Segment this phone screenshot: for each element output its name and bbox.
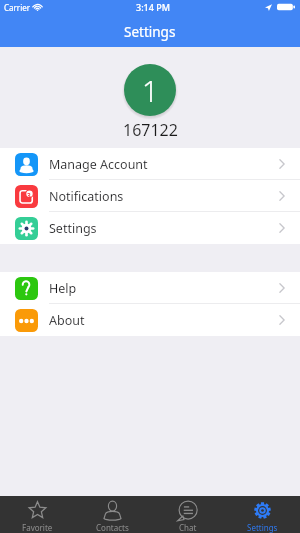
staticText: 167122 xyxy=(123,119,178,141)
staticText: Settings xyxy=(49,220,97,237)
button[interactable]: About xyxy=(0,304,300,336)
staticText: Notifications xyxy=(49,188,124,205)
staticText: 1 xyxy=(142,71,159,110)
staticText: Favorite xyxy=(22,522,53,533)
staticText: 3:14 PM xyxy=(136,1,170,13)
staticText: 3 xyxy=(27,191,31,197)
button[interactable]: 3 xyxy=(0,180,300,212)
button[interactable]: Favorite xyxy=(0,496,75,533)
button[interactable]: Contacts xyxy=(75,496,150,533)
staticText: Carrier xyxy=(4,2,31,13)
button[interactable]: Chat xyxy=(150,496,225,533)
button[interactable]: Help xyxy=(0,272,300,304)
staticText: Chat xyxy=(179,522,197,533)
staticText: Settings xyxy=(247,522,278,533)
button[interactable]: Settings xyxy=(225,496,300,533)
staticText: Manage Account xyxy=(49,156,148,173)
staticText: About xyxy=(49,312,85,329)
staticText: Contacts xyxy=(96,522,129,533)
staticText: Help xyxy=(49,280,77,297)
staticText: Settings xyxy=(124,23,176,41)
button[interactable]: Manage Account xyxy=(0,148,300,180)
button[interactable]: Settings xyxy=(0,212,300,244)
